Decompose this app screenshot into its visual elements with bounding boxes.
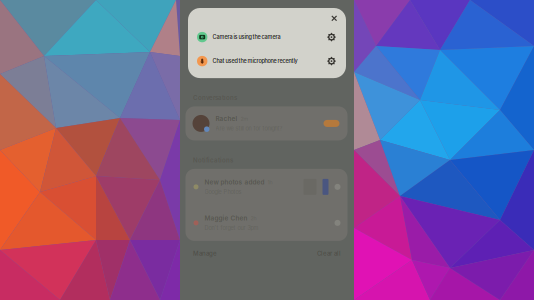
button[interactable]: Close [327, 11, 341, 25]
button[interactable]: Manage [193, 248, 217, 259]
staticText: Manage [193, 250, 217, 257]
staticText: Notifications [193, 156, 233, 164]
button[interactable]: Camera is using the camera [188, 25, 346, 49]
button[interactable]: Clear all [317, 248, 341, 259]
staticText: Rachel [215, 115, 237, 123]
staticText: Chat used the microphone recently [212, 58, 297, 64]
staticText: Don't forget our 3pm [204, 225, 258, 231]
staticText: New photos added [204, 178, 264, 186]
staticText: Google Photos [204, 189, 241, 195]
button[interactable]: Chat used the microphone recently [188, 49, 346, 73]
button[interactable]: Maggie Chen [185, 205, 347, 241]
staticText: Clear all [317, 250, 341, 257]
staticText: Maggie Chen [204, 214, 247, 222]
staticText: Camera is using the camera [212, 34, 280, 40]
button[interactable]: New photos added [185, 169, 347, 205]
button[interactable]: Rachel [180, 106, 347, 140]
staticText: Conversations [193, 94, 237, 101]
